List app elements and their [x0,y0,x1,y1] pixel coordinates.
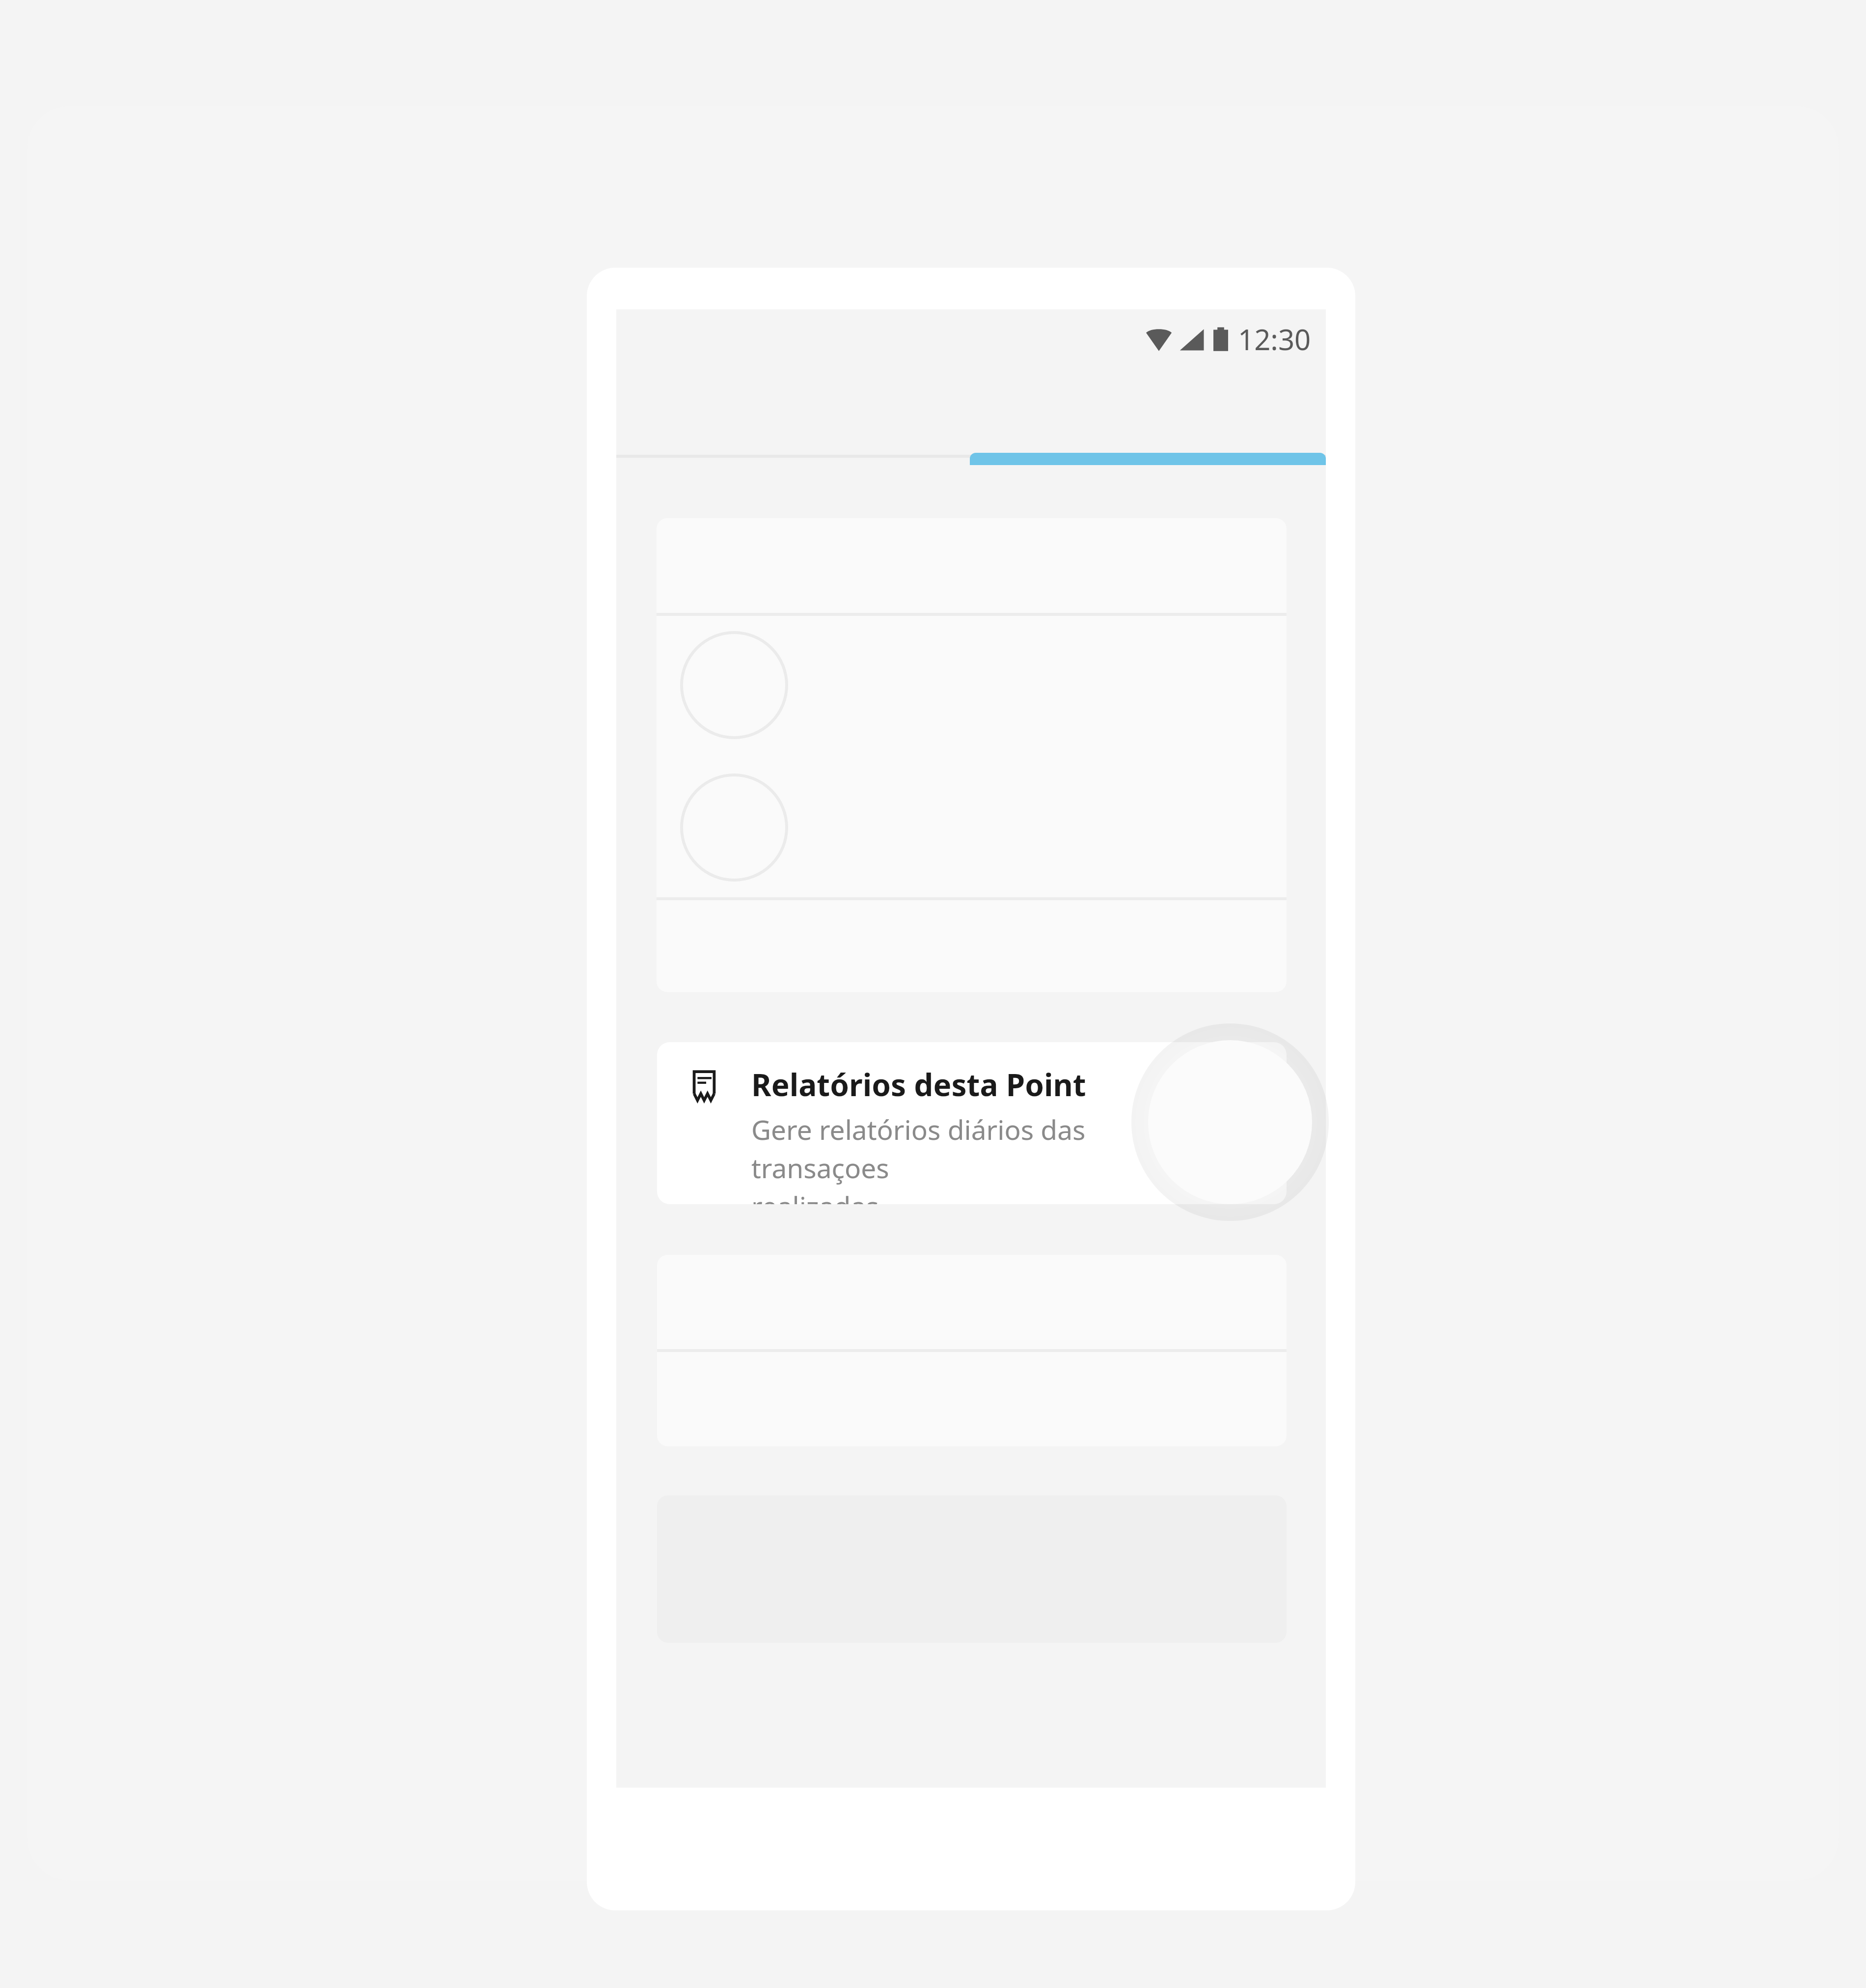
button[interactable] [970,453,1326,465]
staticText: Gere relatórios diários das transaçoes r… [751,1111,1223,1204]
staticText: 12:30 [1238,320,1311,359]
other: Reports [687,1070,721,1103]
button[interactable]: Reports [657,1042,1287,1204]
staticText: Relatórios desta Point [751,1064,1086,1105]
